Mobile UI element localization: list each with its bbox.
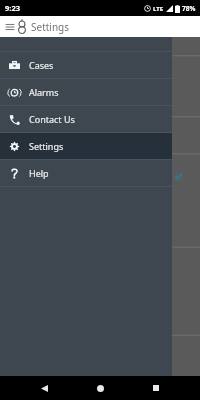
button[interactable]: Checked bbox=[174, 172, 183, 181]
staticText: Help bbox=[29, 167, 49, 179]
staticText: Contact Us bbox=[29, 113, 75, 125]
staticText: 9:23 bbox=[5, 3, 20, 13]
button[interactable]: Open navigation menu bbox=[3, 20, 17, 34]
button[interactable]: Cases bbox=[0, 52, 172, 78]
staticText: Alarms bbox=[29, 86, 59, 98]
button[interactable]: Settings bbox=[0, 133, 172, 159]
staticText: Settings bbox=[29, 140, 64, 152]
staticText: 78% bbox=[182, 4, 196, 13]
staticText: LTE bbox=[153, 5, 164, 13]
button[interactable]: Contact Us bbox=[0, 106, 172, 132]
button[interactable]: Help bbox=[0, 160, 172, 186]
staticText: Cases bbox=[29, 59, 54, 71]
button[interactable]: Recent apps bbox=[144, 376, 168, 400]
staticText: Settings bbox=[31, 20, 70, 34]
button[interactable]: Alarms bbox=[0, 79, 172, 105]
button[interactable]: Home bbox=[88, 376, 112, 400]
button[interactable]: Back bbox=[32, 376, 56, 400]
